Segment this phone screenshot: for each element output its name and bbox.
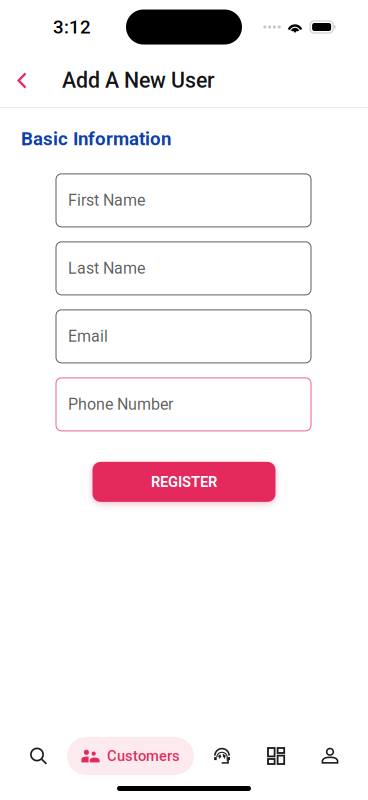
staticText: Phone Number [68,395,173,414]
button[interactable]: Support [194,732,250,780]
staticText: Add A New User [62,68,215,93]
staticText: Customers [107,747,180,765]
staticText: Email [68,327,108,346]
staticText: First Name [68,191,145,210]
button[interactable]: Profile [302,732,358,780]
button[interactable]: Customers [67,737,194,775]
button[interactable]: Back [2,58,43,102]
button[interactable]: Search [10,732,67,780]
staticText: 3:12 [53,16,91,38]
staticText: Last Name [68,259,145,278]
button[interactable]: Dashboard [250,732,302,780]
button[interactable]: REGISTER [92,462,275,502]
staticText: Basic Information [21,128,171,150]
staticText: REGISTER [151,473,217,490]
